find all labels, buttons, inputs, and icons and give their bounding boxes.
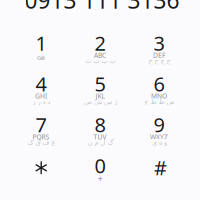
staticText: JKL	[95, 92, 104, 100]
staticText: GHI	[35, 92, 47, 100]
staticText: ABC	[94, 51, 106, 60]
button[interactable]: 1 voicemail	[12, 24, 70, 64]
staticText: غ ف ق ک	[27, 139, 55, 146]
button[interactable]: 2	[71, 24, 129, 64]
button[interactable]: 4	[12, 64, 70, 104]
staticText: DEF	[153, 51, 165, 60]
button[interactable]: 6	[130, 64, 188, 104]
staticText: 3	[153, 30, 164, 56]
staticText: 4	[35, 70, 46, 97]
staticText: 6	[153, 70, 164, 97]
staticText: MNO	[151, 92, 167, 100]
staticText: د ذ ر ز	[32, 98, 50, 105]
staticText: ب پ ت ث	[85, 57, 115, 65]
button[interactable]: Pound	[130, 146, 188, 186]
staticText: +	[97, 172, 102, 185]
button[interactable]: 7	[12, 105, 70, 145]
button[interactable]: 9	[130, 105, 188, 145]
staticText: ج چ ح خ	[148, 57, 170, 65]
staticText: 1	[35, 30, 46, 56]
staticText: 2	[94, 30, 105, 56]
staticText: 8	[94, 111, 105, 138]
staticText: و ه ی	[151, 139, 166, 146]
staticText: ژ س ش ص	[83, 98, 116, 105]
staticText: #	[154, 154, 167, 181]
staticText: TUV	[93, 132, 106, 141]
button[interactable]: 0	[71, 146, 129, 186]
staticText: PQRS	[32, 132, 49, 141]
button[interactable]: 5	[71, 64, 129, 104]
button[interactable]: 8	[71, 105, 129, 145]
staticText: 0913 111 3136	[24, 0, 179, 15]
staticText: گ ل م ن	[87, 139, 113, 146]
staticText: ض ط ظ ع	[144, 98, 174, 105]
button[interactable]: Star	[12, 146, 70, 186]
staticText: 0	[94, 152, 105, 179]
button[interactable]: 3	[130, 24, 188, 64]
staticText: 9	[153, 111, 164, 138]
staticText: 5	[94, 70, 105, 97]
staticText: WXYZ	[150, 132, 168, 141]
staticText: 7	[35, 111, 46, 138]
